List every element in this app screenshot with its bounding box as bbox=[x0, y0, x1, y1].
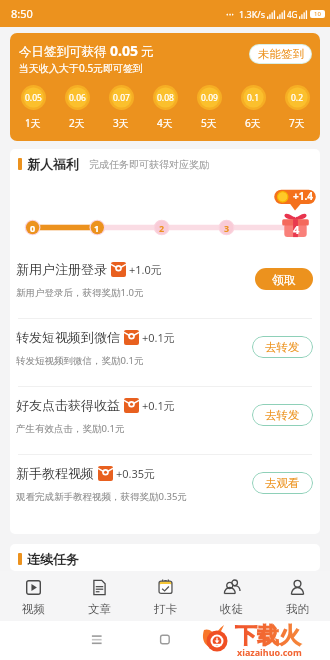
staticText: +1.0元 bbox=[129, 262, 162, 277]
staticText: xiazaihuo.com bbox=[237, 646, 302, 658]
staticText: 今日签到可获得 bbox=[19, 44, 107, 60]
staticText: 4G bbox=[287, 9, 298, 20]
button[interactable]: 0.07 bbox=[105, 85, 137, 130]
staticText: 10 bbox=[314, 10, 321, 18]
button[interactable]: 去观看 bbox=[252, 472, 313, 494]
staticText: 3天 bbox=[113, 116, 129, 130]
staticText: 7天 bbox=[289, 116, 305, 130]
button[interactable]: 新用户注册登录 bbox=[10, 251, 320, 318]
staticText: 2天 bbox=[69, 116, 85, 130]
staticText: 当天收入大于0.5元即可签到 bbox=[19, 61, 144, 75]
staticText: 元 bbox=[141, 44, 154, 60]
staticText: 0 bbox=[30, 222, 36, 234]
staticText: 去转发 bbox=[265, 408, 300, 422]
staticText: 我的 bbox=[286, 602, 309, 616]
staticText: 4天 bbox=[157, 116, 173, 130]
staticText: 打卡 bbox=[154, 602, 177, 616]
button[interactable]: 去转发 bbox=[252, 404, 313, 426]
staticText: 未能签到 bbox=[258, 47, 304, 61]
staticText: 转发短视频到微信，奖励0.1元 bbox=[16, 354, 144, 367]
staticText: 8:50 bbox=[11, 6, 33, 21]
button[interactable]: 0.09 bbox=[193, 85, 225, 130]
staticText: 0.1 bbox=[247, 92, 260, 104]
staticText: ··· bbox=[226, 7, 235, 21]
staticText: 转发短视频到微信 bbox=[16, 329, 120, 345]
staticText: 领取 bbox=[272, 272, 296, 287]
button[interactable]: 打卡 bbox=[132, 571, 198, 621]
staticText: 好友点击获得收益 bbox=[16, 397, 120, 413]
staticText: 0.09 bbox=[201, 92, 218, 104]
button[interactable]: 领取 bbox=[255, 268, 313, 290]
staticText: +0.35元 bbox=[116, 466, 156, 481]
staticText: 视频 bbox=[22, 602, 45, 616]
staticText: 4 bbox=[293, 222, 300, 237]
staticText: 连续任务 bbox=[27, 551, 79, 567]
button[interactable]: 文章 bbox=[66, 571, 132, 621]
staticText: 下载火 bbox=[235, 622, 301, 650]
staticText: 0.08 bbox=[157, 92, 174, 104]
staticText: 1天 bbox=[25, 116, 41, 130]
staticText: 去观看 bbox=[265, 476, 300, 490]
staticText: 0.2 bbox=[291, 92, 304, 104]
button[interactable]: 0.2 bbox=[281, 85, 313, 130]
button[interactable]: 未能签到 bbox=[250, 45, 311, 63]
staticText: 3 bbox=[224, 222, 230, 234]
staticText: 0.05 bbox=[110, 41, 138, 60]
staticText: 0.05 bbox=[25, 92, 42, 104]
button[interactable]: 转发短视频到微信 bbox=[10, 319, 320, 386]
staticText: 新用户注册登录 bbox=[16, 261, 107, 277]
button[interactable]: 0.08 bbox=[149, 85, 181, 130]
button[interactable]: 新手教程视频 bbox=[10, 455, 320, 522]
staticText: 0.07 bbox=[113, 92, 130, 104]
staticText: 去转发 bbox=[265, 340, 300, 354]
staticText: 观看完成新手教程视频，获得奖励0.35元 bbox=[16, 490, 187, 503]
staticText: 2 bbox=[159, 222, 165, 234]
staticText: 文章 bbox=[88, 602, 111, 616]
staticText: 6天 bbox=[245, 116, 261, 130]
button[interactable]: 0.06 bbox=[61, 85, 93, 130]
button[interactable]: 0.05 bbox=[17, 85, 49, 130]
staticText: 0.06 bbox=[69, 92, 86, 104]
button[interactable]: 视频 bbox=[0, 571, 66, 621]
staticText: 1 bbox=[94, 222, 100, 234]
button[interactable]: 我的 bbox=[264, 571, 330, 621]
staticText: 1.3K/s bbox=[239, 8, 265, 20]
staticText: 新手教程视频 bbox=[16, 465, 94, 481]
staticText: 收徒 bbox=[220, 602, 243, 616]
staticText: 完成任务即可获得对应奖励 bbox=[89, 158, 209, 171]
staticText: 新人福利 bbox=[27, 156, 79, 172]
staticText: 5天 bbox=[201, 116, 217, 130]
staticText: +1.4 bbox=[293, 189, 313, 203]
staticText: 新用户登录后，获得奖励1.0元 bbox=[16, 286, 144, 299]
staticText: +0.1元 bbox=[142, 330, 175, 345]
button[interactable]: 收徒 bbox=[198, 571, 264, 621]
staticText: 产生有效点击，奖励0.1元 bbox=[16, 422, 125, 435]
button[interactable]: 0.1 bbox=[237, 85, 269, 130]
staticText: +0.1元 bbox=[142, 398, 175, 413]
button[interactable]: 好友点击获得收益 bbox=[10, 387, 320, 454]
button[interactable]: 去转发 bbox=[252, 336, 313, 358]
